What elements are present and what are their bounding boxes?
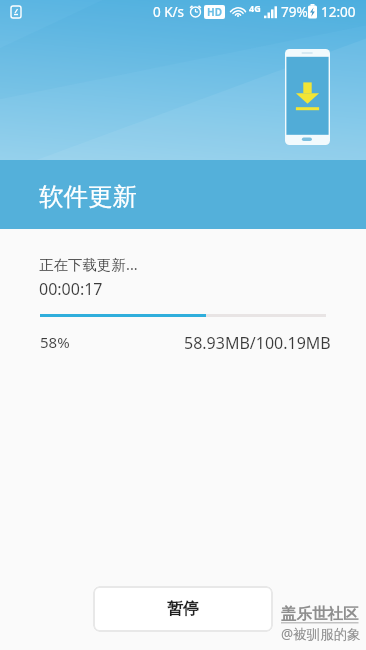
staticText: 正在下载更新... — [39, 254, 138, 274]
staticText: 软件更新 — [39, 181, 137, 212]
button[interactable]: 暂停 — [93, 586, 273, 632]
staticText: 4G — [249, 2, 261, 14]
staticText: HD — [207, 5, 222, 19]
staticText: 0 K/s — [153, 3, 185, 21]
staticText: 58% — [40, 332, 70, 352]
staticText: @被驯服的象 — [281, 625, 361, 643]
staticText: 盖乐世社区 — [281, 604, 359, 624]
staticText: 12:00 — [321, 3, 356, 21]
staticText: 暂停 — [167, 599, 199, 619]
staticText: 79% — [281, 3, 308, 21]
staticText: 00:00:17 — [39, 278, 103, 300]
staticText: 58.93MB/100.19MB — [184, 332, 331, 354]
